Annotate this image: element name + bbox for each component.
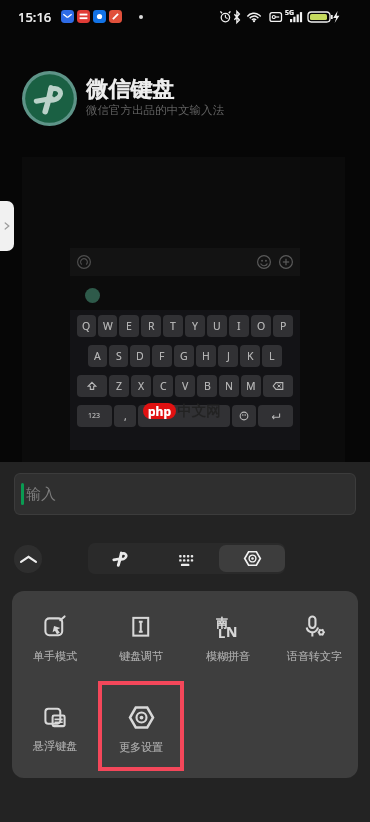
staticText: 5G [285, 8, 295, 18]
staticText: K [247, 349, 254, 363]
staticText: W [103, 319, 113, 333]
staticText: M [246, 379, 256, 393]
button[interactable]: WeChat keyboard [88, 543, 153, 574]
staticText: F [159, 349, 165, 363]
staticText: 15:16 [18, 8, 52, 26]
staticText: php [148, 403, 171, 419]
staticText: 中文网 [177, 402, 221, 420]
button[interactable]: 单手模式 [12, 591, 98, 681]
button[interactable]: G [174, 345, 194, 367]
staticText: X [138, 379, 145, 393]
staticText: 微信键盘 [86, 76, 174, 104]
staticText: 语音转文字 [287, 649, 342, 663]
staticText: 单手模式 [33, 649, 77, 663]
staticText: G [180, 349, 188, 363]
staticText: 模糊拼音 [206, 649, 250, 663]
button[interactable]: 键盘调节 [98, 591, 184, 681]
staticText: Q [82, 319, 91, 333]
button[interactable]: M [241, 375, 261, 397]
button[interactable]: R [141, 315, 161, 337]
button[interactable]: A [88, 345, 107, 367]
staticText: L [218, 624, 226, 642]
button[interactable]: K [240, 345, 260, 367]
button[interactable]: D [130, 345, 150, 367]
staticText: E [126, 319, 132, 333]
button[interactable]: P [273, 315, 293, 337]
staticText: Z [116, 379, 123, 393]
button[interactable]: W [98, 315, 117, 337]
staticText: A [94, 349, 101, 363]
staticText: L [269, 349, 275, 363]
staticText: N [225, 379, 233, 393]
button[interactable]: , [114, 405, 136, 427]
button[interactable]: Keyboard layout [153, 543, 219, 574]
button[interactable]: O [251, 315, 271, 337]
staticText: R [148, 319, 155, 333]
staticText: J [227, 349, 230, 363]
button[interactable]: Expand panel [0, 201, 14, 251]
button[interactable]: 123 [77, 405, 112, 427]
button[interactable]: B [197, 375, 217, 397]
button[interactable]: V [175, 375, 195, 397]
staticText: Y [192, 319, 198, 333]
button[interactable]: Settings [219, 545, 285, 572]
button[interactable]: J [218, 345, 238, 367]
staticText: 微信官方出品的中文输入法 [86, 103, 224, 117]
staticText: T [170, 319, 176, 333]
button[interactable] [263, 375, 293, 397]
button[interactable]: Collapse keyboard [14, 545, 42, 573]
staticText: 南 [216, 615, 228, 630]
button[interactable] [258, 405, 293, 427]
button[interactable]: X [131, 375, 151, 397]
button[interactable]: F [152, 345, 172, 367]
staticText: 输入 [26, 485, 56, 504]
staticText: 123 [88, 411, 101, 421]
button[interactable]: 更多设置 [98, 681, 184, 771]
button[interactable]: 输入 [14, 473, 356, 515]
button[interactable]: N [219, 375, 239, 397]
button[interactable]: S [109, 345, 128, 367]
staticText: D [136, 349, 144, 363]
button[interactable]: H [196, 345, 216, 367]
staticText: 键盘调节 [119, 649, 163, 663]
staticText: , [124, 409, 127, 423]
button[interactable]: Y [185, 315, 205, 337]
button[interactable]: T [163, 315, 183, 337]
staticText: H [202, 349, 210, 363]
staticText: N [226, 622, 238, 641]
button[interactable]: Z [109, 375, 129, 397]
staticText: V [182, 379, 189, 393]
button[interactable]: U [207, 315, 227, 337]
staticText: B [204, 379, 211, 393]
staticText: P [280, 319, 287, 333]
staticText: O [257, 319, 266, 333]
staticText: S [116, 349, 122, 363]
staticText: C [160, 379, 167, 393]
button[interactable]: 语音转文字 [271, 591, 358, 681]
button[interactable] [77, 375, 107, 397]
button[interactable] [138, 405, 230, 427]
button[interactable]: L [262, 345, 282, 367]
button[interactable]: Q [77, 315, 96, 337]
staticText: I [237, 319, 241, 333]
staticText: U [213, 319, 221, 333]
staticText: 悬浮键盘 [33, 739, 77, 753]
button[interactable]: E [119, 315, 139, 337]
button[interactable] [232, 405, 256, 427]
button[interactable]: C [153, 375, 173, 397]
button[interactable]: I [229, 315, 249, 337]
button[interactable]: 悬浮键盘 [12, 681, 98, 771]
button[interactable]: 南 [184, 591, 271, 681]
staticText: 更多设置 [119, 740, 163, 754]
